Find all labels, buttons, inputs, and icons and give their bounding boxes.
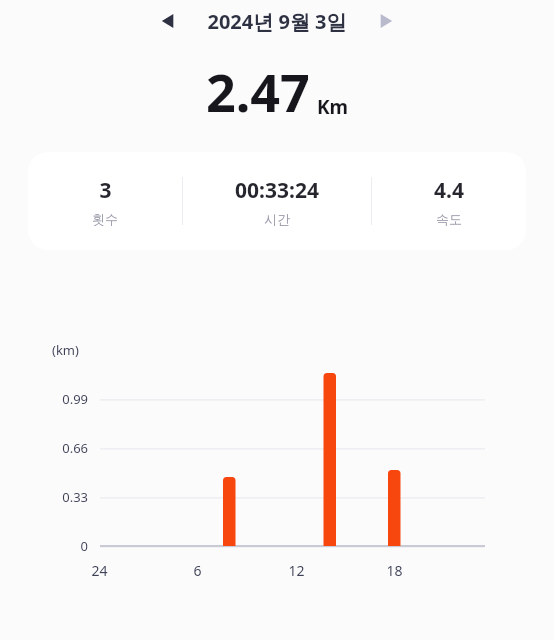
button[interactable]: 4.4: [372, 152, 526, 250]
staticText: 2024년 9월 3일: [207, 8, 347, 35]
button[interactable]: 00:33:24: [183, 152, 371, 250]
staticText: 시간: [264, 211, 290, 227]
staticText: 0.66: [62, 439, 88, 457]
staticText: 4.4: [434, 176, 464, 205]
staticText: 2.47: [206, 56, 310, 127]
button[interactable]: Previous day: [152, 5, 184, 37]
staticText: 6: [193, 561, 202, 580]
button[interactable]: 3: [28, 152, 182, 250]
staticText: (km): [52, 341, 79, 359]
staticText: 12: [288, 561, 305, 580]
staticText: 3: [99, 176, 112, 205]
staticText: 횟수: [92, 211, 118, 227]
staticText: 0.33: [62, 488, 88, 506]
staticText: 속도: [436, 211, 462, 227]
staticText: 0.99: [62, 390, 88, 408]
button[interactable]: 3: [28, 152, 526, 250]
button[interactable]: Next day: [370, 5, 402, 37]
staticText: Km: [317, 94, 349, 120]
staticText: 18: [386, 561, 403, 580]
staticText: 00:33:24: [235, 176, 319, 205]
staticText: 0: [80, 537, 88, 555]
staticText: 24: [91, 561, 108, 580]
